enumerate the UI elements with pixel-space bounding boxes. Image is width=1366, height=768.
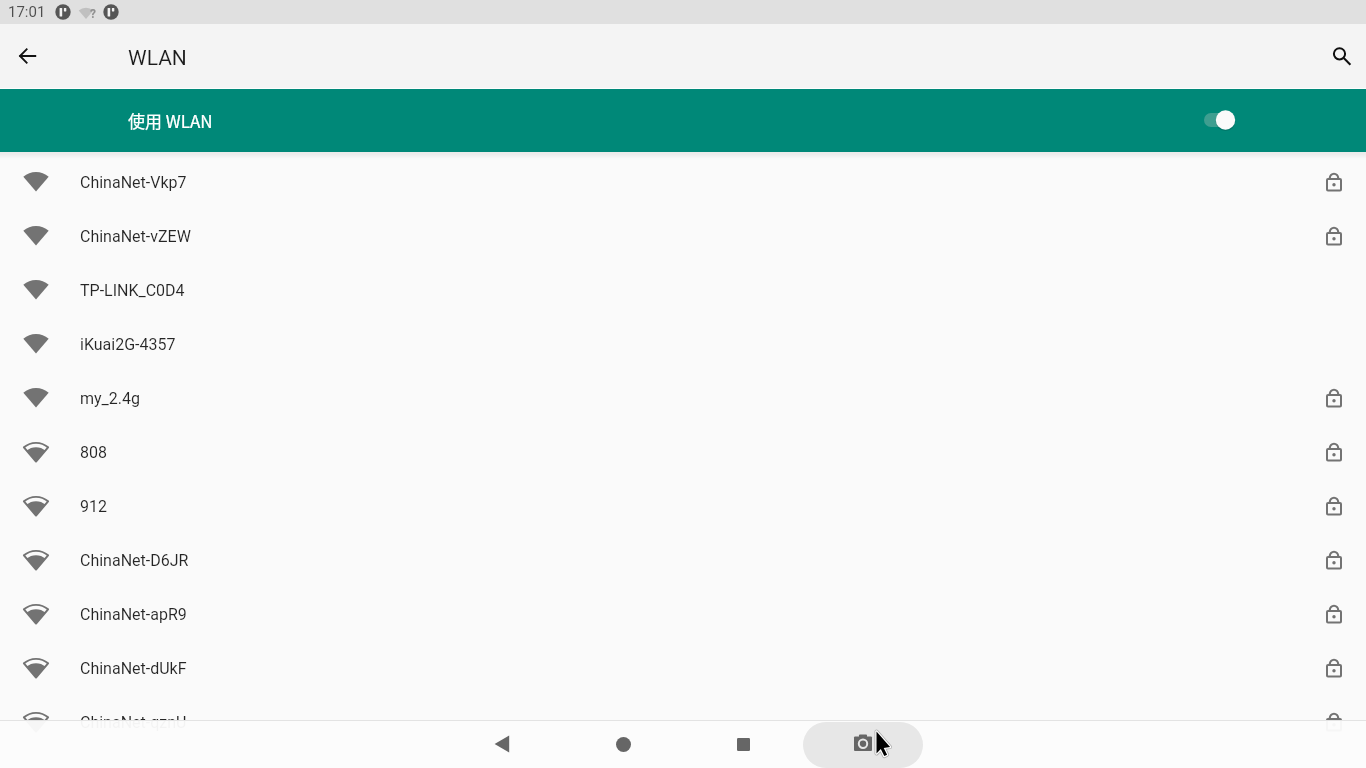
button[interactable]: Recent apps [723,720,763,768]
button[interactable]: ChinaNet-Vkp7 [0,155,1366,209]
staticText: ChinaNet-apR9 [80,605,187,624]
staticText: TP-LINK_C0D4 [80,281,185,300]
staticText: ChinaNet-D6JR [80,551,189,570]
staticText: ChinaNet-qznU [80,713,187,732]
button[interactable]: 808 [0,425,1366,479]
staticText: ChinaNet-dUkF [80,659,187,678]
button[interactable]: Home [603,720,643,768]
button[interactable]: ChinaNet-dUkF [0,641,1366,695]
button[interactable]: ChinaNet-D6JR [0,533,1366,587]
button[interactable]: iKuai2G-4357 [0,317,1366,371]
button[interactable]: Search [1322,37,1362,77]
button[interactable]: 912 [0,479,1366,533]
staticText: 使用 WLAN [128,108,213,133]
staticText: iKuai2G-4357 [80,335,176,354]
button[interactable]: Camera [803,722,923,768]
staticText: my_2.4g [80,389,141,408]
staticText: 808 [80,443,107,462]
button[interactable]: 使用 WLAN [0,88,1366,152]
staticText: ? [90,7,96,21]
staticText: 17:01 [8,3,46,21]
button[interactable]: Back [482,720,522,768]
staticText: WLAN [128,46,187,71]
button[interactable]: my_2.4g [0,371,1366,425]
staticText: ChinaNet-Vkp7 [80,173,187,192]
button[interactable]: ChinaNet-qznU [0,695,1366,749]
button[interactable]: ChinaNet-vZEW [0,209,1366,263]
staticText: 912 [80,497,107,516]
button[interactable]: Back [8,36,48,76]
button[interactable]: TP-LINK_C0D4 [0,263,1366,317]
staticText: ChinaNet-vZEW [80,227,191,246]
button[interactable]: ChinaNet-apR9 [0,587,1366,641]
